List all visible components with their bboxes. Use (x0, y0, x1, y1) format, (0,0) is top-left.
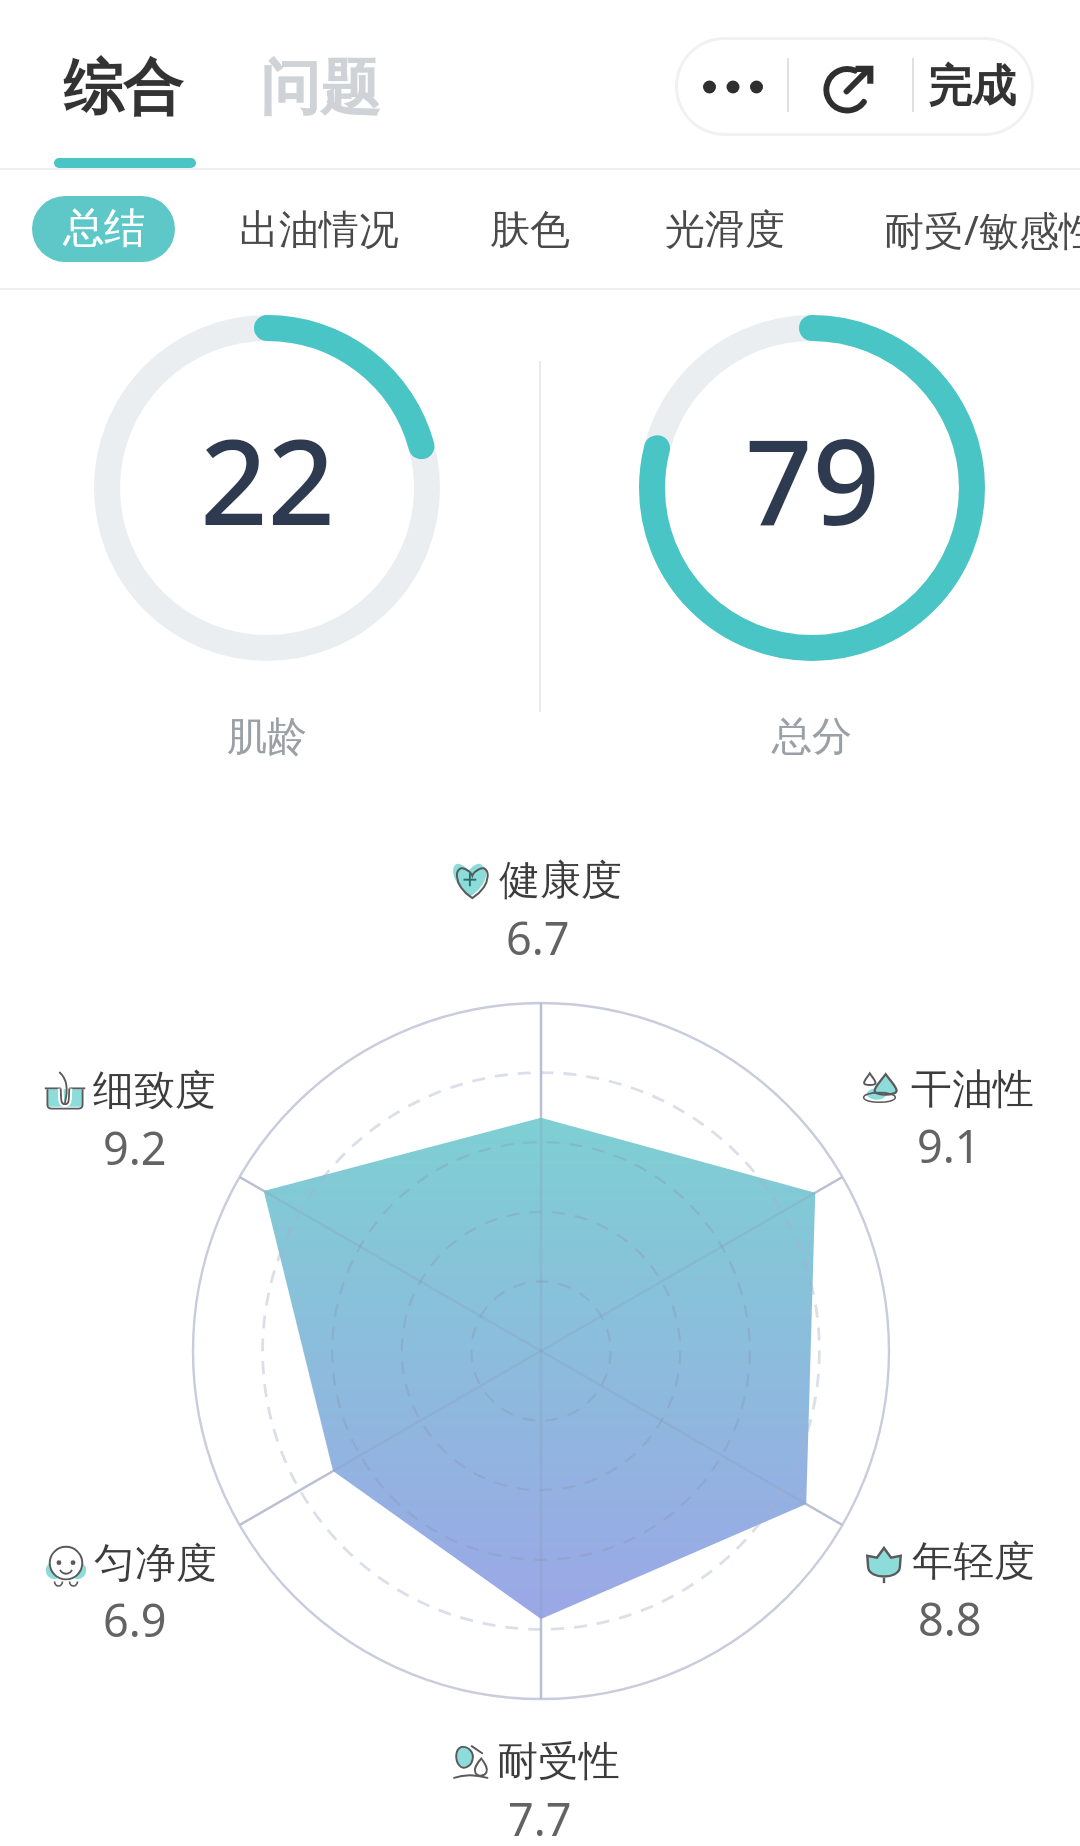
button[interactable]: 匀净度 (44, 1538, 217, 1590)
staticText: 匀净度 (94, 1538, 217, 1590)
staticText: 健康度 (499, 855, 622, 907)
staticText: 总结 (63, 203, 145, 255)
staticText: 问题 (260, 50, 380, 126)
button[interactable]: 健康度 (449, 855, 622, 907)
button[interactable]: More options (678, 40, 787, 133)
button[interactable]: Share (789, 40, 912, 133)
staticText: 完成 (928, 59, 1016, 114)
staticText: 耐受/敏感性 (884, 202, 1080, 257)
staticText: 出油情况 (239, 204, 399, 254)
staticText: 年轻度 (912, 1536, 1035, 1588)
button[interactable]: 耐受/敏感性 (884, 196, 1080, 262)
staticText: 9.2 (103, 1117, 167, 1178)
button[interactable]: 问题 (250, 28, 390, 152)
button[interactable]: 综合 (40, 28, 206, 152)
staticText: 肌龄 (227, 711, 307, 761)
staticText: 22 (200, 399, 335, 560)
button[interactable]: 年轻度 (862, 1536, 1035, 1588)
staticText: 6.9 (103, 1589, 167, 1650)
staticText: 细致度 (93, 1065, 216, 1117)
staticText: 综合 (63, 50, 183, 126)
staticText: 干油性 (911, 1064, 1034, 1116)
staticText: 8.8 (918, 1588, 982, 1649)
button[interactable]: 完成 (914, 40, 1029, 133)
staticText: 79 (745, 399, 880, 560)
staticText: 7.7 (508, 1788, 572, 1846)
button[interactable]: 干油性 (861, 1064, 1034, 1116)
staticText: 光滑度 (665, 204, 785, 254)
button[interactable]: 肤色 (490, 196, 570, 262)
staticText: 6.7 (506, 907, 570, 968)
staticText: 总分 (772, 711, 852, 761)
button[interactable]: 总结 (32, 196, 175, 262)
button[interactable]: 出油情况 (239, 196, 399, 262)
staticText: 耐受性 (497, 1736, 620, 1788)
button[interactable]: 光滑度 (665, 196, 785, 262)
button[interactable]: 细致度 (43, 1065, 216, 1117)
staticText: 肤色 (490, 204, 570, 254)
staticText: 9.1 (917, 1115, 981, 1176)
button[interactable]: 耐受性 (447, 1736, 620, 1788)
